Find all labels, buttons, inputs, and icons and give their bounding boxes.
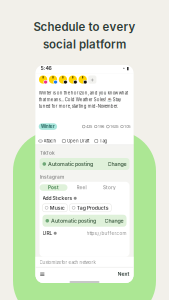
staticText: 196 [98, 124, 104, 129]
staticText: Winter [41, 124, 55, 129]
staticText: Add Stickers [42, 195, 72, 201]
staticText: Open Draft [67, 138, 89, 144]
button[interactable]: Next [117, 271, 129, 277]
button[interactable]: Attach [39, 138, 57, 144]
staticText: social platform [43, 37, 126, 51]
staticText: Post [48, 185, 59, 190]
button[interactable]: Open Draft [62, 138, 89, 144]
staticText: Reel [76, 185, 86, 190]
staticText: Story [103, 185, 116, 190]
staticText: 5:46 [40, 65, 51, 71]
staticText: Next [117, 271, 129, 277]
button[interactable]: Tag [94, 138, 107, 144]
staticText: 435 [86, 124, 92, 129]
staticText: Change [107, 161, 126, 167]
staticText: TikTok [40, 150, 55, 156]
staticText: ≡ [39, 270, 45, 278]
staticText: Automatic posting [51, 217, 96, 224]
staticText: + [90, 76, 94, 83]
staticText: 1635 [110, 124, 118, 129]
staticText: Schedule to every [33, 20, 135, 34]
staticText: Tag Products [77, 205, 109, 211]
staticText: Winter is on the horizon, and you know w… [39, 90, 128, 96]
staticText: tuned for more, starting mid-November. [39, 104, 118, 109]
staticText: Attach [44, 138, 57, 144]
staticText: Instagram [40, 174, 64, 180]
staticText: URL [42, 230, 52, 236]
button[interactable]: Story [95, 184, 123, 191]
button[interactable]: Automatic posting [42, 215, 126, 227]
staticText: Tag [99, 138, 107, 144]
button[interactable]: Reel [67, 184, 95, 191]
button[interactable]: Tag Products [69, 204, 111, 212]
button[interactable]: Automatic posting [39, 158, 129, 170]
staticText: 105 [124, 124, 130, 129]
staticText: Customize for each network [39, 260, 95, 265]
button[interactable]: Music [42, 204, 67, 212]
button[interactable]: Post [39, 184, 67, 191]
staticText: that means... Cold Weather Soles! ☕ Stay [39, 97, 121, 102]
staticText: Automatic posting [48, 161, 93, 167]
staticText: https://buffer.com [86, 230, 126, 236]
staticText: ◦ ▮ [122, 65, 128, 71]
button[interactable]: Options [39, 270, 45, 278]
staticText: Music [50, 205, 65, 211]
staticText: Change [104, 217, 123, 224]
button[interactable]: Add channel [88, 75, 96, 84]
